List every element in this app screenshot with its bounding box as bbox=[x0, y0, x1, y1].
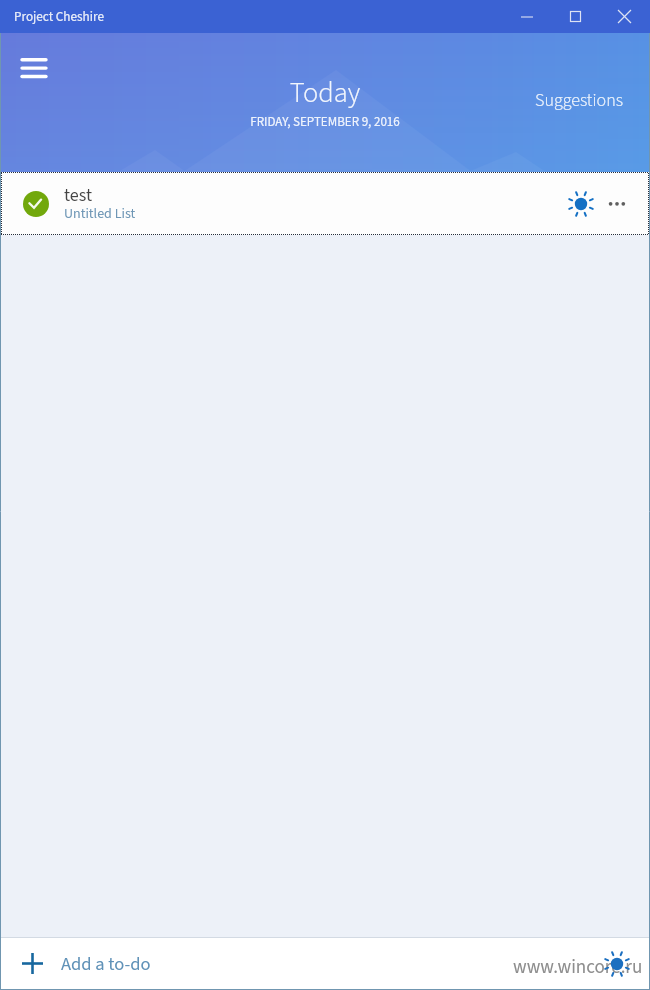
staticText: www.wincore.ru bbox=[513, 954, 643, 981]
button[interactable]: Add a to-do bbox=[0, 937, 650, 990]
button[interactable]: More options bbox=[595, 172, 639, 235]
button[interactable]: test bbox=[0, 172, 650, 235]
staticText: Untitled List bbox=[64, 204, 136, 224]
staticText: Today bbox=[0, 73, 650, 114]
staticText: FRIDAY, SEPTEMBER 9, 2016 bbox=[0, 113, 650, 132]
button[interactable]: Minimize bbox=[503, 0, 551, 33]
staticText: Project Cheshire bbox=[14, 7, 105, 26]
button[interactable]: Maximize bbox=[551, 0, 599, 33]
button[interactable]: My Day bbox=[559, 172, 603, 235]
button[interactable]: Suggestions bbox=[527, 84, 632, 118]
staticText: test bbox=[64, 183, 93, 209]
staticText: Add a to-do bbox=[61, 951, 151, 977]
button[interactable]: Menu bbox=[9, 44, 58, 92]
button[interactable]: Close bbox=[600, 0, 648, 33]
staticText: Suggestions bbox=[535, 88, 624, 114]
